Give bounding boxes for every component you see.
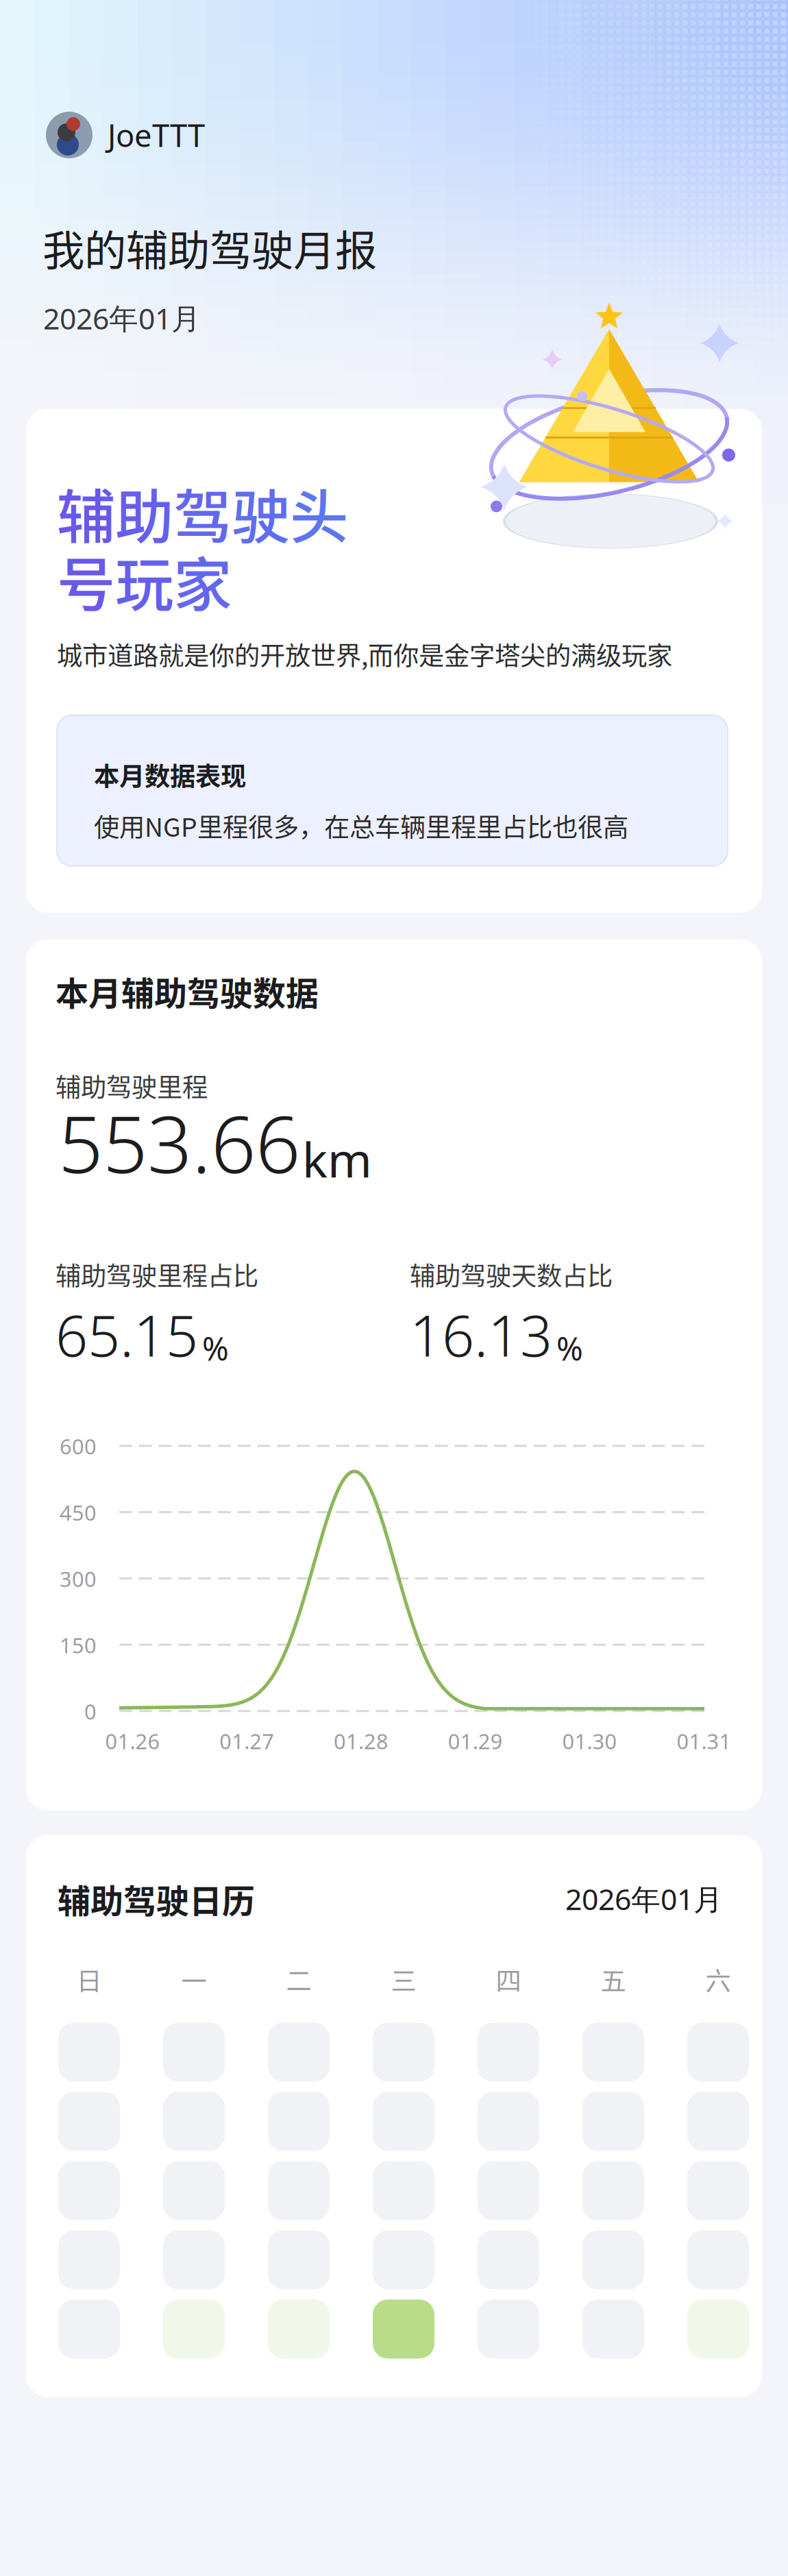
staticText: 01.31 xyxy=(677,1727,731,1755)
staticText: 01.29 xyxy=(448,1727,503,1755)
button[interactable]: JoeTTT xyxy=(0,109,221,161)
staticText: 二 xyxy=(286,1961,311,1998)
staticText: 450 xyxy=(60,1499,97,1526)
staticText: 16.13 xyxy=(410,1297,552,1372)
staticText: 使用NGP里程很多，在总车辆里程里占比也很高 xyxy=(94,807,628,844)
staticText: 六 xyxy=(705,1961,731,1998)
staticText: 驾 xyxy=(173,470,232,555)
staticText: JoeTTT xyxy=(108,114,205,156)
staticText: 2026年01月 xyxy=(565,1879,723,1918)
staticText: 家 xyxy=(173,538,232,623)
staticText: 01.28 xyxy=(334,1727,389,1755)
staticText: 号 xyxy=(57,538,115,623)
staticText: % xyxy=(202,1327,229,1369)
staticText: 01.26 xyxy=(105,1727,160,1755)
staticText: 150 xyxy=(60,1631,97,1659)
staticText: 辅助驾驶里程 xyxy=(56,1067,208,1104)
staticText: 本月辅助驾驶数据 xyxy=(56,967,319,1015)
staticText: 553.66 xyxy=(58,1090,300,1195)
staticText: 300 xyxy=(60,1565,97,1593)
staticText: 2026年01月 xyxy=(43,299,201,338)
staticText: km xyxy=(302,1128,372,1191)
staticText: 01.30 xyxy=(562,1727,617,1755)
staticText: % xyxy=(556,1327,583,1369)
staticText: 头 xyxy=(290,470,348,555)
staticText: 玩 xyxy=(115,538,173,623)
staticText: 日 xyxy=(76,1961,102,1998)
staticText: 01.27 xyxy=(219,1727,274,1755)
staticText: 本月数据表现 xyxy=(94,756,246,793)
staticText: 辅助驾驶里程占比 xyxy=(56,1256,258,1293)
staticText: 三 xyxy=(391,1961,416,1998)
staticText: 我的辅助驾驶月报 xyxy=(42,217,377,278)
staticText: 城市道路就是你的开放世界,而你是金字塔尖的满级玩家 xyxy=(57,636,672,673)
staticText: 600 xyxy=(60,1432,97,1460)
staticText: 0 xyxy=(84,1697,97,1725)
staticText: 四 xyxy=(496,1961,521,1998)
staticText: 65.15 xyxy=(56,1297,198,1372)
staticText: 五 xyxy=(601,1961,626,1998)
staticText: 辅 xyxy=(57,470,115,555)
staticText: 辅助驾驶日历 xyxy=(58,1875,255,1923)
staticText: 驶 xyxy=(232,470,290,555)
staticText: 一 xyxy=(181,1961,207,1998)
staticText: 辅助驾驶天数占比 xyxy=(410,1256,613,1293)
staticText: 助 xyxy=(115,470,173,555)
